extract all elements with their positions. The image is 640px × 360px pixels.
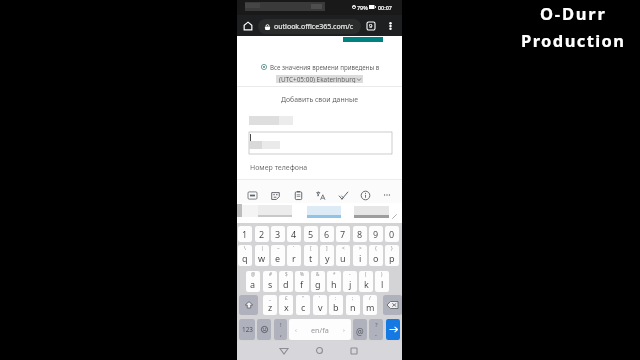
button[interactable]: - [343,271,357,292]
button[interactable]: £ [279,295,293,315]
button[interactable]: At sign [353,319,367,340]
staticText: < [342,245,345,251]
button[interactable]: ' [313,295,327,315]
button[interactable]: More options [382,15,399,36]
staticText: 123 [242,325,253,334]
button[interactable]: 0 [385,226,399,242]
staticText: & [316,271,320,277]
button[interactable]: More [379,187,395,203]
staticText: 6 [324,228,330,240]
button[interactable]: Clipboard [290,187,306,203]
staticText: 79% [357,4,368,11]
button[interactable]: ) [375,271,389,292]
button[interactable]: ` [287,245,301,266]
staticText: , [280,329,282,339]
button[interactable]: GIF [244,187,260,203]
button[interactable]: } [385,245,399,266]
button[interactable]: ( [359,271,373,292]
button[interactable]: 7 [336,226,350,242]
button[interactable]: Space [289,319,351,340]
staticText: b [333,301,339,313]
button[interactable] [307,206,341,217]
button[interactable]: Home [239,15,256,36]
button[interactable]: Comma [274,319,287,340]
button[interactable]: > [353,245,367,266]
button[interactable]: Tabs [363,15,379,36]
button[interactable]: / [363,295,377,315]
button[interactable]: [ [304,245,318,266]
button[interactable]: 5 [304,226,318,242]
staticText: Номер телефона [250,163,308,173]
button[interactable]: 6 [320,226,334,242]
button[interactable]: _ [263,295,277,315]
button[interactable]: Back [273,343,295,358]
button[interactable]: 9 [369,226,383,242]
button[interactable]: Numbers [239,319,255,340]
button[interactable]: % [295,271,309,292]
staticText: d [283,278,289,290]
staticText: t [309,252,313,264]
staticText: . [375,329,377,339]
button[interactable]: Translate [312,187,328,203]
staticText: k [364,278,369,290]
staticText: 9 [369,22,373,30]
button[interactable]: ; [346,295,360,315]
button[interactable]: { [369,245,383,266]
staticText: 0 [389,228,395,240]
button[interactable]: 3 [271,226,285,242]
button[interactable]: 8 [353,226,367,242]
button[interactable]: Edit suggestions [392,214,397,219]
staticText: 9 [373,228,379,240]
staticText: z [268,301,273,313]
button[interactable]: < [336,245,350,266]
staticText: Добавить свои данные [281,95,358,104]
button[interactable]: Emoji [257,319,271,340]
staticText: x [284,301,289,313]
button[interactable]: Home [308,343,330,358]
staticText: ; [352,295,354,301]
staticText: f [300,278,304,290]
button[interactable]: Info [357,187,373,203]
staticText: g [315,278,321,290]
staticText: s [268,278,273,290]
button[interactable]: 1 [238,226,252,242]
staticText: > [359,245,362,251]
button[interactable] [354,206,389,217]
button[interactable]: (UTC+05:00) Ekaterinburg [276,75,363,83]
button[interactable]: Shift [239,295,258,315]
staticText: / [369,295,371,301]
button[interactable]: 4 [287,226,301,242]
button[interactable]: " [296,295,310,315]
button[interactable]: * [327,271,341,292]
button[interactable]: Recents [343,343,365,358]
staticText: c [301,301,306,313]
button[interactable]: @ [246,271,260,292]
staticText: ] [326,245,328,251]
button[interactable]: ] [320,245,334,266]
button[interactable]: Enter [386,319,400,340]
staticText: 5 [308,228,314,240]
button[interactable]: Backspace [383,295,402,315]
staticText: 00:07 [378,4,392,11]
staticText: y [325,252,330,264]
staticText: \ [244,245,246,251]
button[interactable]: ~ [271,245,285,266]
staticText: # [269,271,272,277]
button[interactable]: 2 [255,226,269,242]
button[interactable]: : [329,295,343,315]
staticText: _ [269,295,272,301]
staticText: a [250,278,256,290]
button[interactable]: Done [335,187,351,203]
button[interactable]: outlook.office365.com/c [258,19,361,34]
button[interactable]: Sticker [267,187,283,203]
button[interactable]: # [263,271,277,292]
button[interactable]: \ [238,245,252,266]
button[interactable] [258,205,292,217]
button[interactable]: & [311,271,325,292]
button[interactable]: | [255,245,269,266]
staticText: e [275,252,281,264]
button[interactable] [249,132,392,154]
staticText: ! [280,321,282,329]
button[interactable]: Period [369,319,383,340]
button[interactable]: $ [279,271,293,292]
